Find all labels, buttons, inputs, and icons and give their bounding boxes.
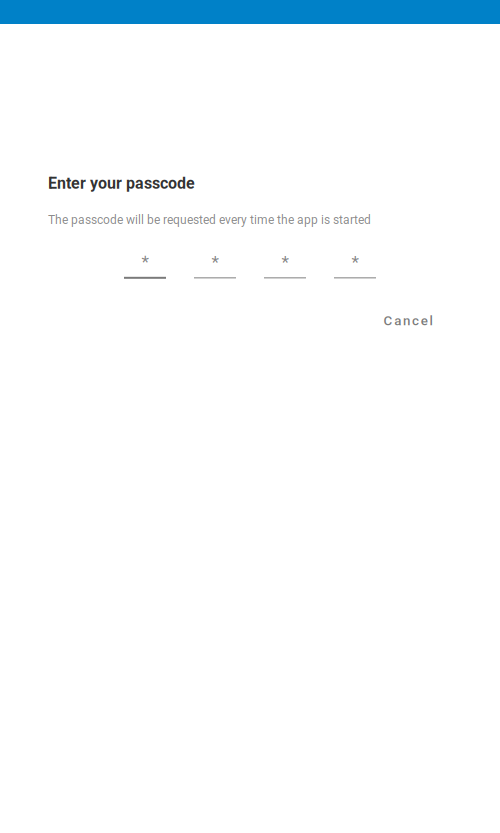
staticText: * [351,252,358,272]
staticText: * [281,252,288,272]
button[interactable]: Passcode digit [334,247,376,278]
staticText: * [141,252,148,272]
staticText: The passcode will be requested every tim… [48,213,371,227]
staticText: Cancel [383,313,432,329]
staticText: * [211,252,218,272]
button[interactable]: Passcode digit 1 [124,247,166,279]
staticText: Enter your passcode [48,174,195,193]
button[interactable]: Passcode digit [264,247,306,278]
button[interactable]: Cancel [373,311,443,331]
button[interactable]: Passcode digit [194,247,236,278]
